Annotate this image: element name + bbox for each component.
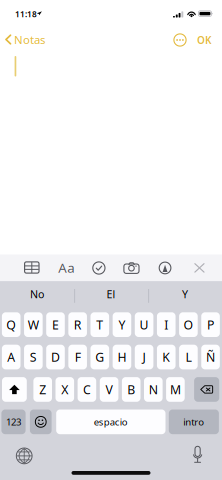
button[interactable]: El [74, 281, 148, 307]
staticText: Q [6, 316, 16, 333]
staticText: L [185, 349, 191, 365]
button[interactable]: Close [194, 263, 205, 273]
button[interactable]: B [122, 377, 140, 402]
button[interactable]: P [201, 312, 220, 337]
staticText: Aa [58, 258, 74, 277]
staticText: H [117, 349, 126, 365]
button[interactable]: D [46, 345, 65, 369]
button[interactable]: Markup [159, 262, 171, 274]
button[interactable]: V [100, 377, 118, 402]
button[interactable]: Return [169, 409, 219, 434]
staticText: 123 [6, 415, 21, 428]
button[interactable]: G [90, 345, 109, 369]
button[interactable]: Next keyboard [16, 448, 32, 464]
button[interactable]: Aa [58, 261, 74, 274]
button[interactable]: A [2, 345, 20, 369]
button[interactable]: N [144, 377, 163, 402]
button[interactable]: Delete [194, 377, 219, 402]
staticText: P [207, 316, 214, 333]
staticText: Ñ [206, 349, 215, 365]
button[interactable]: K [157, 345, 175, 369]
button[interactable]: Notas [5, 30, 53, 49]
button[interactable]: M [166, 377, 185, 402]
button[interactable]: No [0, 281, 74, 307]
staticText: M [170, 381, 181, 398]
button[interactable]: J [135, 345, 153, 369]
button[interactable]: I [157, 312, 175, 337]
staticText: 11:18 [15, 8, 37, 20]
button[interactable]: Dictation [193, 446, 202, 464]
button[interactable]: Emoji [30, 409, 52, 434]
button[interactable]: O [179, 312, 198, 337]
button[interactable]: OK [194, 31, 214, 49]
button[interactable]: X [55, 377, 74, 402]
button[interactable]: S [24, 345, 43, 369]
staticText: U [140, 316, 149, 333]
staticText: I [164, 316, 168, 333]
staticText: No [30, 287, 44, 301]
staticText: V [106, 381, 113, 398]
button[interactable]: W [24, 312, 43, 337]
button[interactable]: Camera [124, 262, 139, 273]
button[interactable]: Table [25, 262, 39, 273]
button[interactable]: E [46, 312, 65, 337]
staticText: N [149, 381, 158, 398]
button[interactable]: Y [113, 312, 131, 337]
button[interactable]: Shift [2, 377, 27, 402]
staticText: espacio [94, 415, 128, 428]
staticText: S [30, 349, 37, 365]
staticText: T [96, 316, 103, 333]
button[interactable]: Q [2, 312, 20, 337]
staticText: F [75, 349, 81, 365]
button[interactable]: T [90, 312, 109, 337]
staticText: J [143, 349, 146, 365]
staticText: El [106, 287, 115, 301]
button[interactable]: Ñ [201, 345, 220, 369]
staticText: Z [39, 381, 46, 398]
staticText: B [127, 381, 135, 398]
button[interactable]: More [172, 32, 188, 48]
staticText: G [95, 349, 104, 365]
staticText: R [74, 316, 82, 333]
staticText: OK [197, 33, 211, 47]
button[interactable]: Checklist [93, 262, 105, 274]
button[interactable]: F [68, 345, 87, 369]
staticText: A [7, 349, 15, 365]
staticText: C [83, 381, 91, 398]
staticText: W [28, 316, 39, 333]
staticText: X [61, 381, 68, 398]
button[interactable]: Z [33, 377, 52, 402]
button[interactable]: H [113, 345, 131, 369]
staticText: intro [183, 415, 204, 428]
button[interactable]: Space [56, 409, 165, 434]
staticText: E [52, 316, 59, 333]
staticText: Y [182, 287, 188, 301]
staticText: Notas [14, 32, 45, 47]
button[interactable]: C [78, 377, 96, 402]
staticText: D [51, 349, 60, 365]
button[interactable]: Numbers [1, 409, 26, 434]
button[interactable]: Y [148, 281, 222, 307]
staticText: Y [118, 316, 125, 333]
staticText: K [162, 349, 170, 365]
button[interactable]: U [135, 312, 153, 337]
staticText: O [183, 316, 193, 333]
button[interactable]: R [68, 312, 87, 337]
button[interactable]: L [179, 345, 198, 369]
